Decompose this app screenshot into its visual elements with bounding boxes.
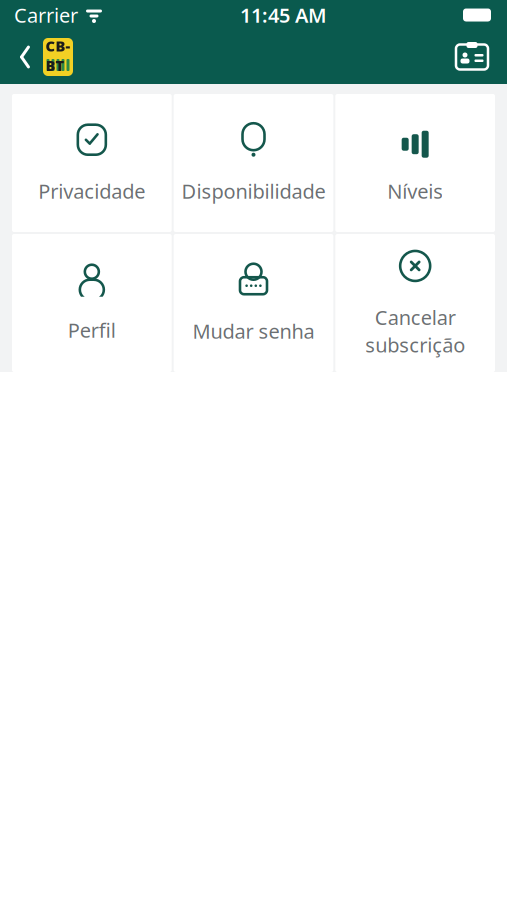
button[interactable]: Carteirinha	[453, 34, 507, 80]
button[interactable]: Disponibilidade	[174, 94, 333, 232]
button[interactable]: Back	[0, 31, 74, 83]
button[interactable]: Cancelar	[335, 234, 495, 372]
staticText: Privacidade	[38, 178, 145, 204]
staticText: Perfil	[68, 317, 116, 343]
staticText: Cancelar	[375, 304, 456, 330]
staticText: subscrição	[365, 331, 465, 358]
button[interactable]: Níveis	[335, 94, 495, 232]
staticText: Carrier	[14, 2, 78, 28]
button[interactable]: Privacidade	[12, 94, 172, 232]
staticText: CBBT	[45, 36, 70, 75]
staticText: Mudar senha	[192, 318, 314, 344]
staticText: Disponibilidade	[181, 178, 325, 204]
staticText: 11:45 AM	[240, 2, 327, 28]
staticText: Níveis	[387, 178, 443, 204]
button[interactable]: Perfil	[12, 234, 172, 372]
button[interactable]: Mudar senha	[174, 234, 333, 372]
